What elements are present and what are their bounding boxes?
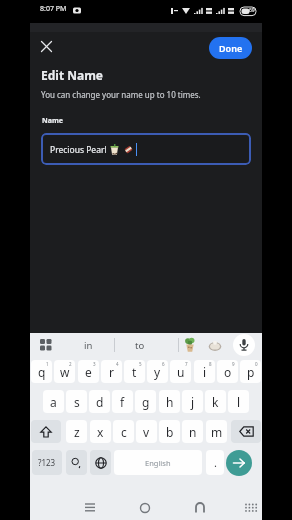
staticText: 3: [93, 361, 96, 367]
staticText: x: [97, 424, 104, 440]
staticText: Precious Pearl: [50, 144, 109, 156]
button[interactable]: f: [112, 390, 133, 413]
staticText: g: [142, 394, 150, 410]
button[interactable]: b: [159, 420, 180, 443]
staticText: d: [96, 394, 104, 410]
button[interactable]: s: [66, 390, 87, 413]
button[interactable]: [41, 41, 52, 52]
button[interactable]: [226, 450, 252, 476]
staticText: 8: [209, 361, 212, 367]
button[interactable]: d: [89, 390, 110, 413]
staticText: l: [237, 394, 241, 410]
button[interactable]: [31, 420, 61, 443]
staticText: s: [74, 394, 80, 410]
staticText: 9: [232, 361, 235, 367]
button[interactable]: ?123: [32, 450, 62, 475]
button[interactable]: v: [136, 420, 157, 443]
button[interactable]: k: [205, 390, 226, 413]
staticText: to: [135, 339, 145, 352]
staticText: q: [38, 364, 46, 380]
button[interactable]: .: [206, 450, 224, 475]
staticText: 8:07 PM: [40, 4, 67, 14]
staticText: Edit Name: [41, 67, 104, 83]
staticText: a: [50, 394, 57, 410]
button[interactable]: o: [217, 360, 238, 383]
button[interactable]: h: [159, 390, 180, 413]
button[interactable]: j: [182, 390, 203, 413]
staticText: e: [85, 364, 92, 380]
staticText: r: [109, 364, 114, 380]
staticText: n: [189, 424, 197, 440]
staticText: t: [132, 364, 137, 380]
staticText: 4: [116, 361, 119, 367]
staticText: j: [191, 394, 195, 410]
button[interactable]: q: [31, 360, 52, 383]
button[interactable]: [208, 338, 222, 352]
staticText: w: [60, 364, 70, 380]
staticText: 0: [255, 361, 258, 367]
staticText: 69: [249, 7, 255, 14]
staticText: z: [74, 424, 80, 440]
button[interactable]: e: [78, 360, 99, 383]
button[interactable]: [78, 498, 102, 518]
staticText: 5: [139, 361, 142, 367]
button[interactable]: i: [194, 360, 215, 383]
button[interactable]: z: [66, 420, 87, 443]
button[interactable]: [183, 338, 197, 352]
button[interactable]: w: [54, 360, 75, 383]
staticText: b: [166, 424, 174, 440]
button[interactable]: [188, 498, 212, 518]
staticText: ?123: [38, 457, 56, 468]
button[interactable]: [233, 334, 255, 356]
staticText: c: [121, 424, 127, 440]
staticText: v: [143, 424, 150, 440]
button[interactable]: in: [66, 333, 110, 357]
staticText: You can change your name up to 10 times.: [41, 89, 201, 100]
staticText: in: [84, 339, 93, 352]
button[interactable]: a: [43, 390, 64, 413]
staticText: i: [203, 364, 207, 380]
staticText: Done: [219, 42, 243, 54]
button[interactable]: [40, 339, 52, 351]
button[interactable]: Done: [209, 37, 252, 59]
button[interactable]: [90, 450, 111, 475]
staticText: y: [154, 364, 161, 380]
staticText: h: [166, 394, 174, 410]
staticText: m: [211, 424, 223, 440]
button[interactable]: c: [113, 420, 134, 443]
staticText: 6: [162, 361, 165, 367]
button[interactable]: Precious Pearl: [41, 133, 251, 165]
button[interactable]: [231, 420, 261, 443]
button[interactable]: English: [114, 450, 202, 475]
button[interactable]: [66, 450, 87, 475]
staticText: English: [145, 458, 171, 468]
button[interactable]: n: [182, 420, 203, 443]
staticText: 7: [185, 361, 188, 367]
button[interactable]: p: [240, 360, 261, 383]
staticText: k: [212, 394, 219, 410]
button[interactable]: l: [228, 390, 249, 413]
staticText: .: [214, 455, 217, 470]
staticText: p: [247, 364, 255, 380]
staticText: Name: [42, 116, 63, 126]
button[interactable]: r: [101, 360, 122, 383]
button[interactable]: y: [147, 360, 168, 383]
button[interactable]: [239, 498, 263, 518]
button[interactable]: g: [135, 390, 156, 413]
staticText: 2: [69, 361, 72, 367]
staticText: f: [120, 394, 125, 410]
staticText: o: [224, 364, 232, 380]
button[interactable]: m: [206, 420, 227, 443]
button[interactable]: u: [170, 360, 191, 383]
button[interactable]: [133, 498, 157, 518]
button[interactable]: x: [90, 420, 111, 443]
staticText: u: [177, 364, 185, 380]
button[interactable]: t: [124, 360, 145, 383]
button[interactable]: to: [118, 333, 162, 357]
staticText: 1: [46, 361, 49, 367]
